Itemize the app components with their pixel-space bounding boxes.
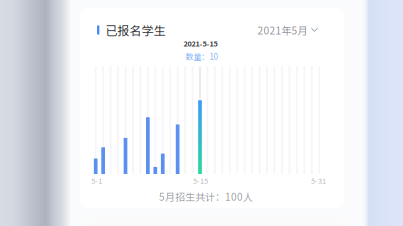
staticText: 5月招生共计：100人	[159, 189, 253, 204]
staticText: 2021-5-15	[183, 38, 217, 48]
button[interactable]: 2021年5月	[257, 23, 318, 37]
staticText: 5-31	[311, 175, 326, 186]
staticText: 数量：10	[185, 50, 217, 62]
staticText: 2021年5月	[257, 23, 307, 37]
staticText: 5-1	[91, 175, 102, 186]
staticText: 5-15	[193, 175, 208, 186]
staticText: 已报名学生	[105, 21, 165, 39]
